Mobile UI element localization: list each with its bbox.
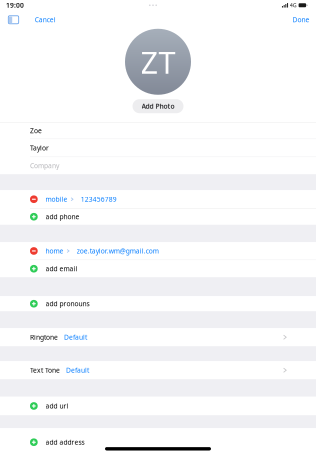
staticText: Default bbox=[66, 366, 89, 375]
button[interactable]: add pronouns bbox=[0, 296, 316, 311]
button[interactable]: Text Tone bbox=[0, 361, 316, 379]
staticText: mobile bbox=[46, 195, 68, 204]
button[interactable]: Ringtone bbox=[0, 328, 316, 346]
button[interactable]: Show sidebar bbox=[5, 12, 22, 28]
button[interactable]: Add Photo bbox=[132, 99, 183, 113]
staticText: zoe.taylor.wm@gmail.com bbox=[77, 247, 159, 255]
staticText: add url bbox=[46, 402, 69, 410]
staticText: Cancel bbox=[35, 15, 56, 24]
button[interactable]: home bbox=[0, 242, 316, 260]
staticText: 4G bbox=[290, 2, 297, 9]
staticText: Taylor bbox=[30, 144, 49, 152]
staticText: Company bbox=[30, 161, 59, 170]
staticText: Zoe bbox=[30, 126, 42, 135]
staticText: Add Photo bbox=[141, 102, 174, 111]
staticText: home bbox=[46, 247, 64, 255]
staticText: Ringtone bbox=[30, 333, 58, 342]
staticText: ZT bbox=[140, 41, 175, 82]
staticText: Default bbox=[64, 333, 87, 342]
button[interactable]: add address bbox=[0, 428, 316, 456]
button[interactable]: Done bbox=[289, 11, 312, 28]
button[interactable]: add url bbox=[0, 397, 316, 415]
staticText: Done bbox=[292, 15, 309, 24]
staticText: add address bbox=[46, 438, 85, 447]
button[interactable]: mobile bbox=[0, 190, 316, 208]
staticText: Text Tone bbox=[30, 366, 60, 375]
button[interactable]: Cancel bbox=[32, 11, 59, 28]
staticText: add phone bbox=[46, 212, 80, 221]
button[interactable]: add email bbox=[0, 260, 316, 277]
staticText: 19:00 bbox=[6, 1, 24, 10]
staticText: add pronouns bbox=[46, 299, 90, 308]
staticText: add email bbox=[46, 264, 78, 273]
staticText: 123456789 bbox=[81, 195, 117, 204]
button[interactable]: add phone bbox=[0, 209, 316, 225]
